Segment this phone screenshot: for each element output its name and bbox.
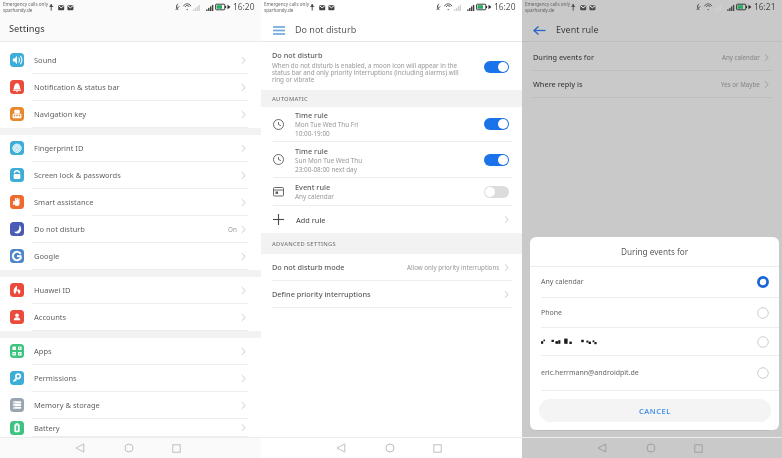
button[interactable]: Notification & status bar [0, 74, 261, 101]
staticText: 23:00-08:00 next day [295, 165, 357, 174]
staticText: sparhandy.de [525, 7, 555, 13]
staticText: Emergency calls only [3, 1, 48, 7]
button[interactable]: On [484, 154, 509, 166]
staticText: Sound [34, 55, 57, 65]
button[interactable]: On [484, 118, 509, 130]
button[interactable]: Screen lock & passwords [0, 162, 261, 189]
staticText: Do not disturb [34, 224, 85, 234]
staticText: Apps [34, 346, 52, 356]
staticText: Do not disturb mode [272, 262, 345, 272]
button[interactable]: Add rule [261, 206, 522, 233]
staticText: Smart assistance [34, 197, 94, 207]
staticText: When do not disturb is enabled, a moon i… [272, 61, 470, 84]
staticText: Mon Tue Wed Thu Fri [295, 120, 359, 129]
staticText: During events for [533, 52, 595, 62]
staticText: Memory & storage [34, 400, 100, 410]
button[interactable]: Home [117, 438, 141, 458]
staticText: ADVANCED SETTINGS [272, 240, 337, 248]
button[interactable]: Back [590, 438, 614, 458]
button[interactable]: Where reply is [522, 71, 782, 98]
button[interactable]: Navigation key [0, 101, 261, 128]
button[interactable]: Smart assistance [0, 189, 261, 216]
staticText: Huawei ID [34, 285, 71, 295]
button[interactable]: Off [484, 186, 509, 198]
staticText: Do not disturb [272, 50, 323, 60]
staticText: 10:00-19:00 [295, 129, 330, 138]
staticText: During events for [621, 246, 689, 257]
staticText: 16:21 [754, 1, 776, 12]
staticText: Accounts [34, 312, 67, 322]
staticText: Permissions [34, 373, 77, 383]
button[interactable]: Memory & storage [0, 392, 261, 419]
staticText: Add rule [296, 215, 326, 225]
button[interactable]: Recents [164, 438, 188, 458]
button[interactable]: Menu [271, 23, 286, 38]
staticText: Any calendar [722, 53, 760, 61]
button[interactable]: Back [68, 438, 92, 458]
staticText: 16:20 [494, 1, 516, 12]
button[interactable]: Apps [0, 338, 261, 365]
staticText: Fingerprint ID [34, 143, 84, 153]
staticText: Do not disturb [295, 23, 357, 35]
button[interactable]: eric.herrmann@androidpit.de [530, 356, 779, 391]
button[interactable]: During events for [522, 44, 782, 71]
staticText: Time rule [295, 146, 328, 156]
staticText: eric.herrmann@androidpit.de [541, 368, 639, 378]
staticText: Any calendar [295, 192, 334, 201]
button[interactable]: Do not disturb [0, 216, 261, 243]
button[interactable] [530, 328, 779, 356]
staticText: Phone [541, 308, 563, 318]
staticText: Allow only priority interruptions [407, 263, 500, 271]
staticText: Event rule [295, 182, 331, 192]
button[interactable]: Battery [0, 419, 261, 437]
staticText: On [228, 225, 237, 234]
staticText: sparhandy.de [3, 7, 33, 13]
button[interactable]: Time rule [261, 142, 522, 178]
button[interactable]: Home [639, 438, 663, 458]
button[interactable]: Back [532, 23, 547, 38]
staticText: AUTOMATIC [272, 95, 308, 103]
staticText: CANCEL [639, 406, 671, 416]
staticText: Define priority interruptions [272, 289, 371, 299]
button[interactable]: Time rule [261, 107, 522, 142]
staticText: Battery [34, 423, 60, 433]
staticText: Event rule [556, 23, 599, 35]
staticText: Emergency calls only [525, 1, 570, 7]
button[interactable]: CANCEL [539, 399, 771, 422]
staticText: Screen lock & passwords [34, 170, 121, 180]
button[interactable]: Home [378, 438, 402, 458]
button[interactable]: Accounts [0, 304, 261, 331]
staticText: Where reply is [533, 79, 583, 89]
staticText: Google [34, 251, 60, 261]
staticText: Any calendar [541, 277, 584, 287]
button[interactable]: On [484, 61, 509, 73]
button[interactable]: Huawei ID [0, 277, 261, 304]
staticText: Yes or Maybe [721, 80, 760, 88]
button[interactable]: Any calendar [530, 267, 779, 298]
button[interactable]: Do not disturb [261, 44, 522, 90]
button[interactable]: Phone [530, 298, 779, 328]
button[interactable]: Back [329, 438, 353, 458]
staticText: Sun Mon Tue Wed Thu [295, 156, 363, 165]
staticText: 16:20 [233, 1, 255, 12]
staticText: Settings [9, 22, 45, 35]
button[interactable]: Permissions [0, 365, 261, 392]
button[interactable]: Define priority interruptions [261, 281, 522, 308]
staticText: Navigation key [34, 109, 87, 119]
staticText: Emergency calls only [264, 1, 309, 7]
button[interactable]: Do not disturb mode [261, 254, 522, 281]
button[interactable]: Fingerprint ID [0, 135, 261, 162]
staticText: Notification & status bar [34, 82, 120, 92]
button[interactable]: Google [0, 243, 261, 270]
button[interactable]: Sound [0, 47, 261, 74]
staticText: Time rule [295, 110, 328, 120]
button[interactable]: Recents [425, 438, 449, 458]
staticText: sparhandy.de [264, 7, 294, 13]
button[interactable]: Recents [686, 438, 710, 458]
button[interactable]: Event rule [261, 178, 522, 206]
